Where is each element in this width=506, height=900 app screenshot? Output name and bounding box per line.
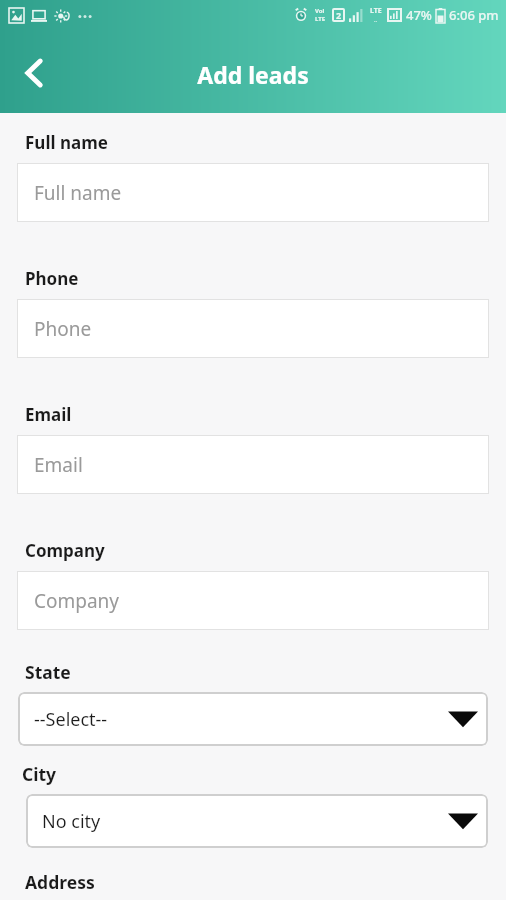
button[interactable]: Full name [17, 163, 489, 222]
staticText: Full name [34, 180, 122, 206]
button[interactable]: Back [6, 44, 62, 102]
staticText: Vol [315, 7, 325, 15]
staticText: No city [42, 809, 101, 834]
staticText: Company [25, 539, 105, 562]
staticText: Email [25, 403, 72, 426]
staticText: 6:06 pm [449, 6, 499, 24]
staticText: LTE [315, 15, 326, 23]
staticText: --Select-- [34, 707, 108, 732]
staticText: Full name [25, 131, 108, 154]
staticText: 2 [336, 9, 342, 21]
button[interactable]: --Select-- [18, 692, 488, 746]
staticText: Phone [34, 316, 92, 342]
staticText: .. [374, 16, 378, 24]
staticText: Address [25, 870, 95, 894]
staticText: Add leads [0, 59, 506, 90]
button[interactable]: No city [26, 794, 488, 848]
staticText: Company [34, 588, 120, 614]
staticText: LTE [370, 6, 382, 16]
button[interactable]: Email [17, 435, 489, 494]
button[interactable]: Phone [17, 299, 489, 358]
staticText: 47% [406, 6, 432, 24]
staticText: Email [34, 452, 83, 478]
staticText: State [25, 660, 71, 684]
staticText: City [22, 762, 57, 786]
button[interactable]: Company [17, 571, 489, 630]
staticText: Phone [25, 267, 79, 290]
